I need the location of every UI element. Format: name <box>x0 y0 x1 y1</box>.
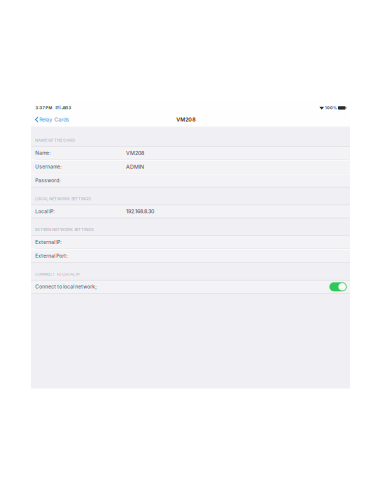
staticText: 3:37 PM <box>36 105 53 110</box>
button[interactable]: Name: <box>31 146 350 160</box>
staticText: External Port: <box>35 253 67 259</box>
staticText: EXTERN NETWORK SETTINGS <box>35 227 93 232</box>
staticText: Relay Cards <box>39 116 69 123</box>
staticText: 192.168.8.30 <box>126 208 154 215</box>
staticText: VM208 <box>176 116 195 123</box>
button[interactable]: Local IP: <box>31 204 350 218</box>
staticText: Connect to local network; <box>35 284 96 290</box>
staticText: Password: <box>35 178 60 183</box>
staticText: VM208 <box>126 150 144 156</box>
staticText: Local IP: <box>35 208 54 214</box>
staticText: CONNECT TO LOCAL IP <box>35 272 79 276</box>
staticText: Fri Jan 3 <box>53 105 72 110</box>
button[interactable]: Username: <box>31 160 350 174</box>
button[interactable]: Connect to local network; <box>31 280 350 294</box>
staticText: LOCAL NETWORK SETTINGS <box>35 196 90 201</box>
staticText: Username: <box>35 164 61 170</box>
staticText: ADMIN <box>126 164 144 170</box>
staticText: 100% <box>324 105 338 110</box>
staticText: Name: <box>35 150 50 156</box>
button[interactable]: External Port: <box>31 249 350 263</box>
button[interactable]: Relay Cards <box>31 112 72 127</box>
staticText: NAME OF THE CARD <box>35 138 75 143</box>
button[interactable]: External IP: <box>31 235 350 249</box>
button[interactable]: Password: <box>31 174 350 187</box>
staticText: External IP: <box>35 239 61 245</box>
